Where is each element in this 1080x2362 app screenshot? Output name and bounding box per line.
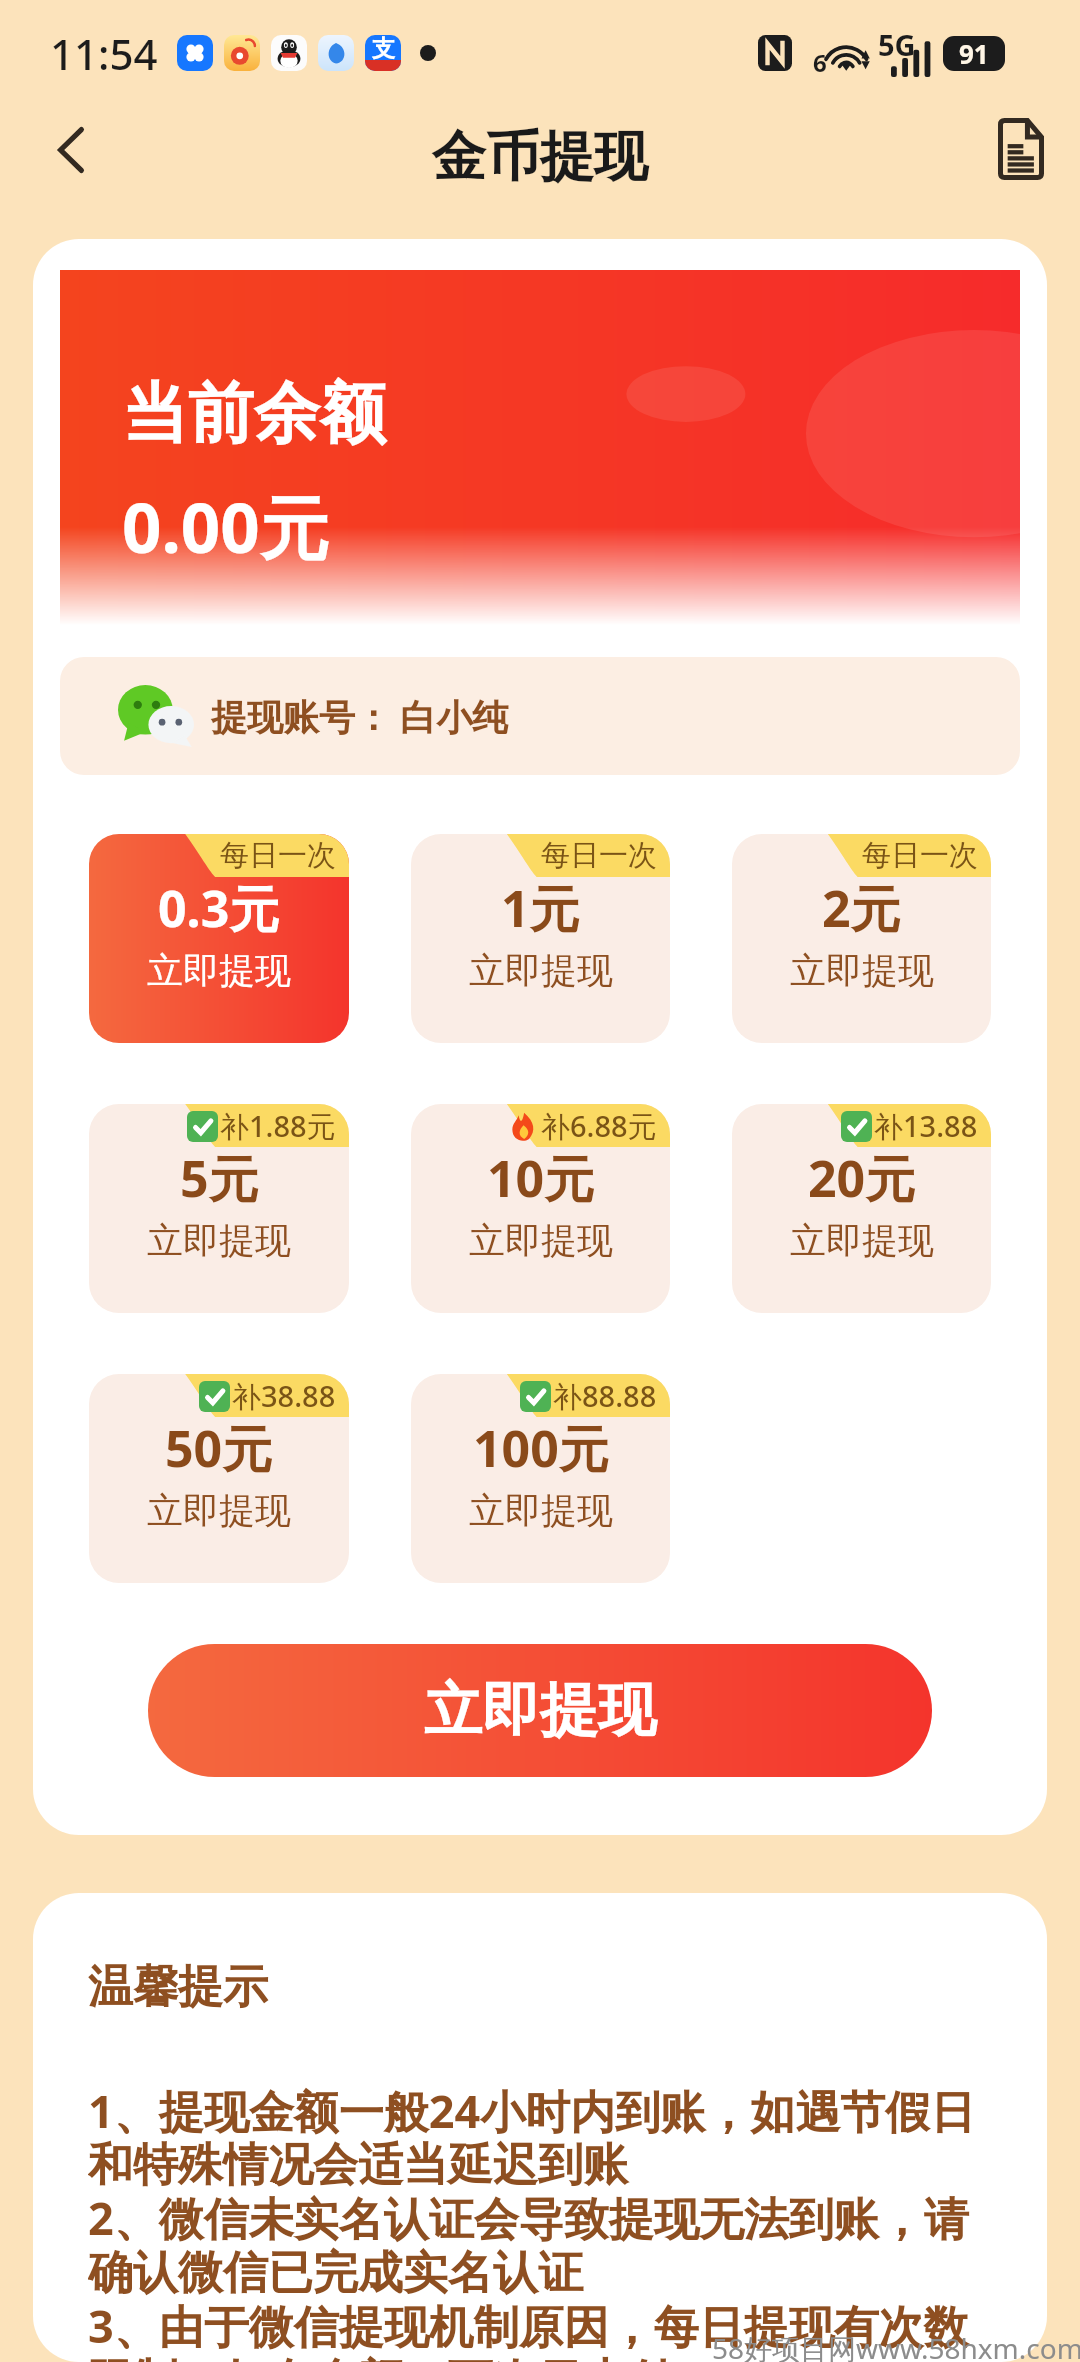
staticText: 1元 bbox=[501, 874, 580, 942]
staticText: 金币提现 bbox=[432, 123, 648, 191]
staticText: 立即提现 bbox=[147, 948, 291, 993]
button[interactable]: 立即提现 bbox=[148, 1644, 932, 1777]
staticText: 提现账号： 白小纯 bbox=[211, 692, 509, 741]
button[interactable]: 每日一次 bbox=[89, 834, 349, 1043]
staticText: 当前余额 bbox=[122, 372, 386, 455]
button[interactable]: 每日一次 bbox=[732, 834, 991, 1043]
staticText: 5元 bbox=[180, 1144, 259, 1212]
staticText: 91 bbox=[959, 36, 989, 71]
staticText: 补38.88 bbox=[232, 1376, 336, 1416]
staticText: 0.3元 bbox=[158, 874, 280, 942]
button[interactable]: 每日一次 bbox=[411, 834, 670, 1043]
staticText: 每日一次 bbox=[541, 837, 657, 874]
staticText: 补1.88元 bbox=[220, 1106, 336, 1146]
button[interactable]: Back bbox=[21, 100, 121, 200]
staticText: 立即提现 bbox=[790, 948, 934, 993]
staticText: 补6.88元 bbox=[541, 1106, 657, 1146]
staticText: 立即提现 bbox=[469, 948, 613, 993]
staticText: 20元 bbox=[808, 1144, 916, 1212]
staticText: 支 bbox=[372, 35, 395, 63]
staticText: 0.00元 bbox=[122, 479, 329, 573]
staticText: 立即提现 bbox=[147, 1218, 291, 1263]
staticText: 立即提现 bbox=[424, 1674, 656, 1747]
staticText: 6 bbox=[813, 46, 827, 79]
button[interactable]: 补13.88 bbox=[732, 1104, 991, 1313]
button[interactable]: 补38.88 bbox=[89, 1374, 349, 1583]
button[interactable]: Records bbox=[971, 99, 1071, 199]
staticText: 每日一次 bbox=[220, 837, 336, 874]
staticText: 立即提现 bbox=[469, 1488, 613, 1533]
button[interactable]: 提现账号： 白小纯 bbox=[60, 657, 1020, 775]
staticText: 立即提现 bbox=[469, 1218, 613, 1263]
staticText: 50元 bbox=[165, 1414, 273, 1482]
staticText: 10元 bbox=[487, 1144, 595, 1212]
staticText: 2元 bbox=[822, 874, 901, 942]
staticText: 立即提现 bbox=[147, 1488, 291, 1533]
button[interactable]: 补6.88元 bbox=[411, 1104, 670, 1313]
staticText: 11:54 bbox=[50, 25, 158, 82]
staticText: 100元 bbox=[473, 1414, 609, 1482]
button[interactable]: 补88.88 bbox=[411, 1374, 670, 1583]
staticText: 温馨提示 bbox=[88, 1959, 268, 2016]
staticText: 1、提现金额一般24小时内到账，如遇节假日和特殊情况会适当延迟到账 2、微信未实… bbox=[88, 2080, 988, 2362]
button[interactable]: 补1.88元 bbox=[89, 1104, 349, 1313]
staticText: 每日一次 bbox=[862, 837, 978, 874]
staticText: 5G bbox=[878, 25, 916, 64]
staticText: 补13.88 bbox=[874, 1106, 978, 1146]
staticText: 补88.88 bbox=[553, 1376, 657, 1416]
staticText: 立即提现 bbox=[790, 1218, 934, 1263]
staticText: 58好项目网www.58hxm.com bbox=[712, 2329, 1080, 2362]
